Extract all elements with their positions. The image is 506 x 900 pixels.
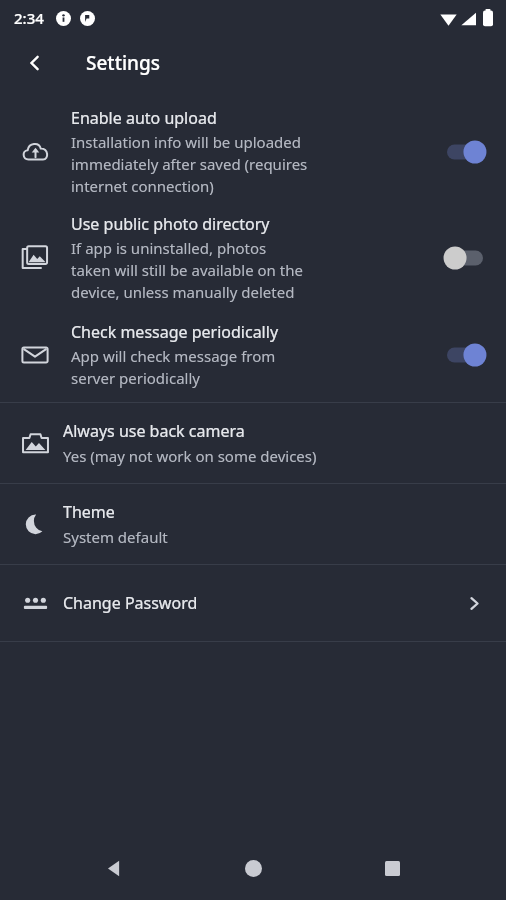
button[interactable]: Check message periodically [0, 317, 506, 393]
button[interactable]: On [438, 339, 492, 371]
staticText: Installation info will be uploaded immed… [71, 132, 308, 197]
staticText: Theme [63, 501, 115, 523]
staticText: Yes (may not work on some devices) [63, 446, 317, 466]
staticText: Always use back camera [63, 420, 245, 442]
staticText: Change Password [63, 592, 465, 614]
staticText: System default [63, 527, 168, 547]
button[interactable]: Off [438, 242, 492, 274]
button[interactable]: Change Password [0, 565, 506, 641]
button[interactable]: Enable auto upload [0, 103, 506, 201]
button[interactable]: Theme [0, 484, 506, 564]
button[interactable]: Back [13, 41, 57, 85]
staticText: If app is uninstalled, photos taken will… [71, 238, 303, 303]
staticText: Check message periodically [71, 321, 279, 343]
staticText: Use public photo directory [71, 213, 270, 235]
button[interactable]: Use public photo directory [0, 209, 506, 307]
button[interactable]: On [438, 136, 492, 168]
staticText: 2:34 [14, 8, 44, 28]
staticText: Settings [86, 50, 160, 76]
button[interactable]: Back [89, 843, 139, 893]
button[interactable]: Home [228, 843, 278, 893]
staticText: Enable auto upload [71, 107, 217, 129]
button[interactable]: Recent apps [367, 843, 417, 893]
button[interactable]: Always use back camera [0, 403, 506, 483]
staticText: App will check message from server perio… [71, 346, 276, 389]
